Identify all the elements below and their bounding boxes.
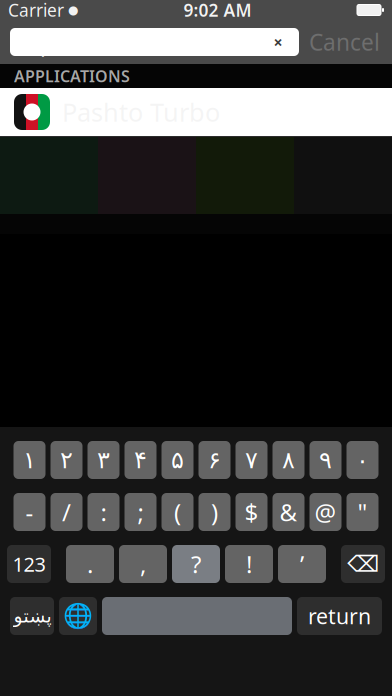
staticText: ● bbox=[64, 3, 78, 17]
staticText: pash bbox=[40, 27, 92, 57]
button[interactable]: $ bbox=[235, 493, 267, 531]
button[interactable]: ۷ bbox=[235, 441, 267, 479]
staticText: Carrier bbox=[8, 0, 64, 21]
staticText: 🌐 bbox=[63, 602, 93, 630]
staticText: ۵ bbox=[171, 446, 184, 474]
staticText: ! bbox=[246, 548, 252, 580]
staticText: ۹ bbox=[319, 446, 332, 474]
button[interactable]: . bbox=[66, 545, 114, 583]
staticText: ) bbox=[211, 496, 218, 528]
staticText: ۷ bbox=[245, 446, 258, 474]
staticText: @ bbox=[314, 496, 336, 528]
button[interactable]: Clear text bbox=[265, 29, 291, 55]
button[interactable]: ) bbox=[198, 493, 230, 531]
button[interactable]: , bbox=[119, 545, 167, 583]
button[interactable]: Delete bbox=[341, 545, 385, 583]
staticText: APPLICATIONS bbox=[14, 65, 130, 87]
button[interactable]: ۵ bbox=[161, 441, 193, 479]
button[interactable]: - bbox=[13, 493, 45, 531]
button[interactable]: @ bbox=[309, 493, 341, 531]
staticText: . bbox=[87, 548, 93, 580]
staticText: ; bbox=[137, 496, 143, 528]
staticText: , bbox=[140, 548, 146, 580]
button[interactable]: Pashto Turbo bbox=[0, 88, 392, 136]
staticText: ۳ bbox=[97, 446, 110, 474]
staticText: ? bbox=[191, 548, 201, 580]
button[interactable]: space bbox=[102, 597, 292, 635]
staticText: ۸ bbox=[282, 446, 295, 474]
staticText: ⌫ bbox=[347, 551, 379, 577]
button[interactable]: ! bbox=[225, 545, 273, 583]
button[interactable]: / bbox=[50, 493, 82, 531]
button[interactable]: ۱ bbox=[13, 441, 45, 479]
staticText: Pashto Turbo bbox=[62, 95, 220, 129]
staticText: × bbox=[273, 31, 282, 53]
button[interactable]: 123 bbox=[7, 545, 51, 583]
staticText: ۴ bbox=[134, 446, 147, 474]
button[interactable]: Cancel bbox=[307, 27, 382, 57]
staticText: $ bbox=[244, 496, 258, 528]
button[interactable]: ; bbox=[124, 493, 156, 531]
button[interactable]: ۳ bbox=[87, 441, 119, 479]
button[interactable]: ۸ bbox=[272, 441, 304, 479]
staticText: " bbox=[357, 496, 367, 528]
button[interactable]: : bbox=[87, 493, 119, 531]
button[interactable]: ۹ bbox=[309, 441, 341, 479]
staticText: ۱ bbox=[23, 446, 36, 474]
button[interactable]: ۲ bbox=[50, 441, 82, 479]
staticText: ۶ bbox=[208, 446, 221, 474]
button[interactable]: Next keyboard bbox=[59, 597, 97, 635]
staticText: پښتو bbox=[13, 605, 51, 627]
staticText: / bbox=[62, 496, 71, 528]
button[interactable]: ۴ bbox=[124, 441, 156, 479]
button[interactable]: & bbox=[272, 493, 304, 531]
button[interactable]: ( bbox=[161, 493, 193, 531]
button[interactable]: ? bbox=[172, 545, 220, 583]
staticText: return bbox=[308, 602, 371, 630]
staticText: Cancel bbox=[309, 27, 380, 57]
button[interactable]: ۶ bbox=[198, 441, 230, 479]
staticText: ۰ bbox=[356, 446, 369, 474]
staticText: ۲ bbox=[60, 446, 73, 474]
staticText: ’ bbox=[300, 548, 304, 580]
button[interactable]: ۰ bbox=[346, 441, 378, 479]
staticText: ( bbox=[174, 496, 181, 528]
staticText: - bbox=[25, 496, 33, 528]
staticText: 123 bbox=[12, 551, 45, 577]
button[interactable]: return bbox=[297, 597, 382, 635]
staticText: : bbox=[100, 496, 106, 528]
button[interactable]: " bbox=[346, 493, 378, 531]
staticText: & bbox=[279, 496, 297, 528]
button[interactable]: پښتو bbox=[10, 597, 54, 635]
button[interactable]: ’ bbox=[278, 545, 326, 583]
staticText: 9:02 AM bbox=[183, 0, 251, 21]
